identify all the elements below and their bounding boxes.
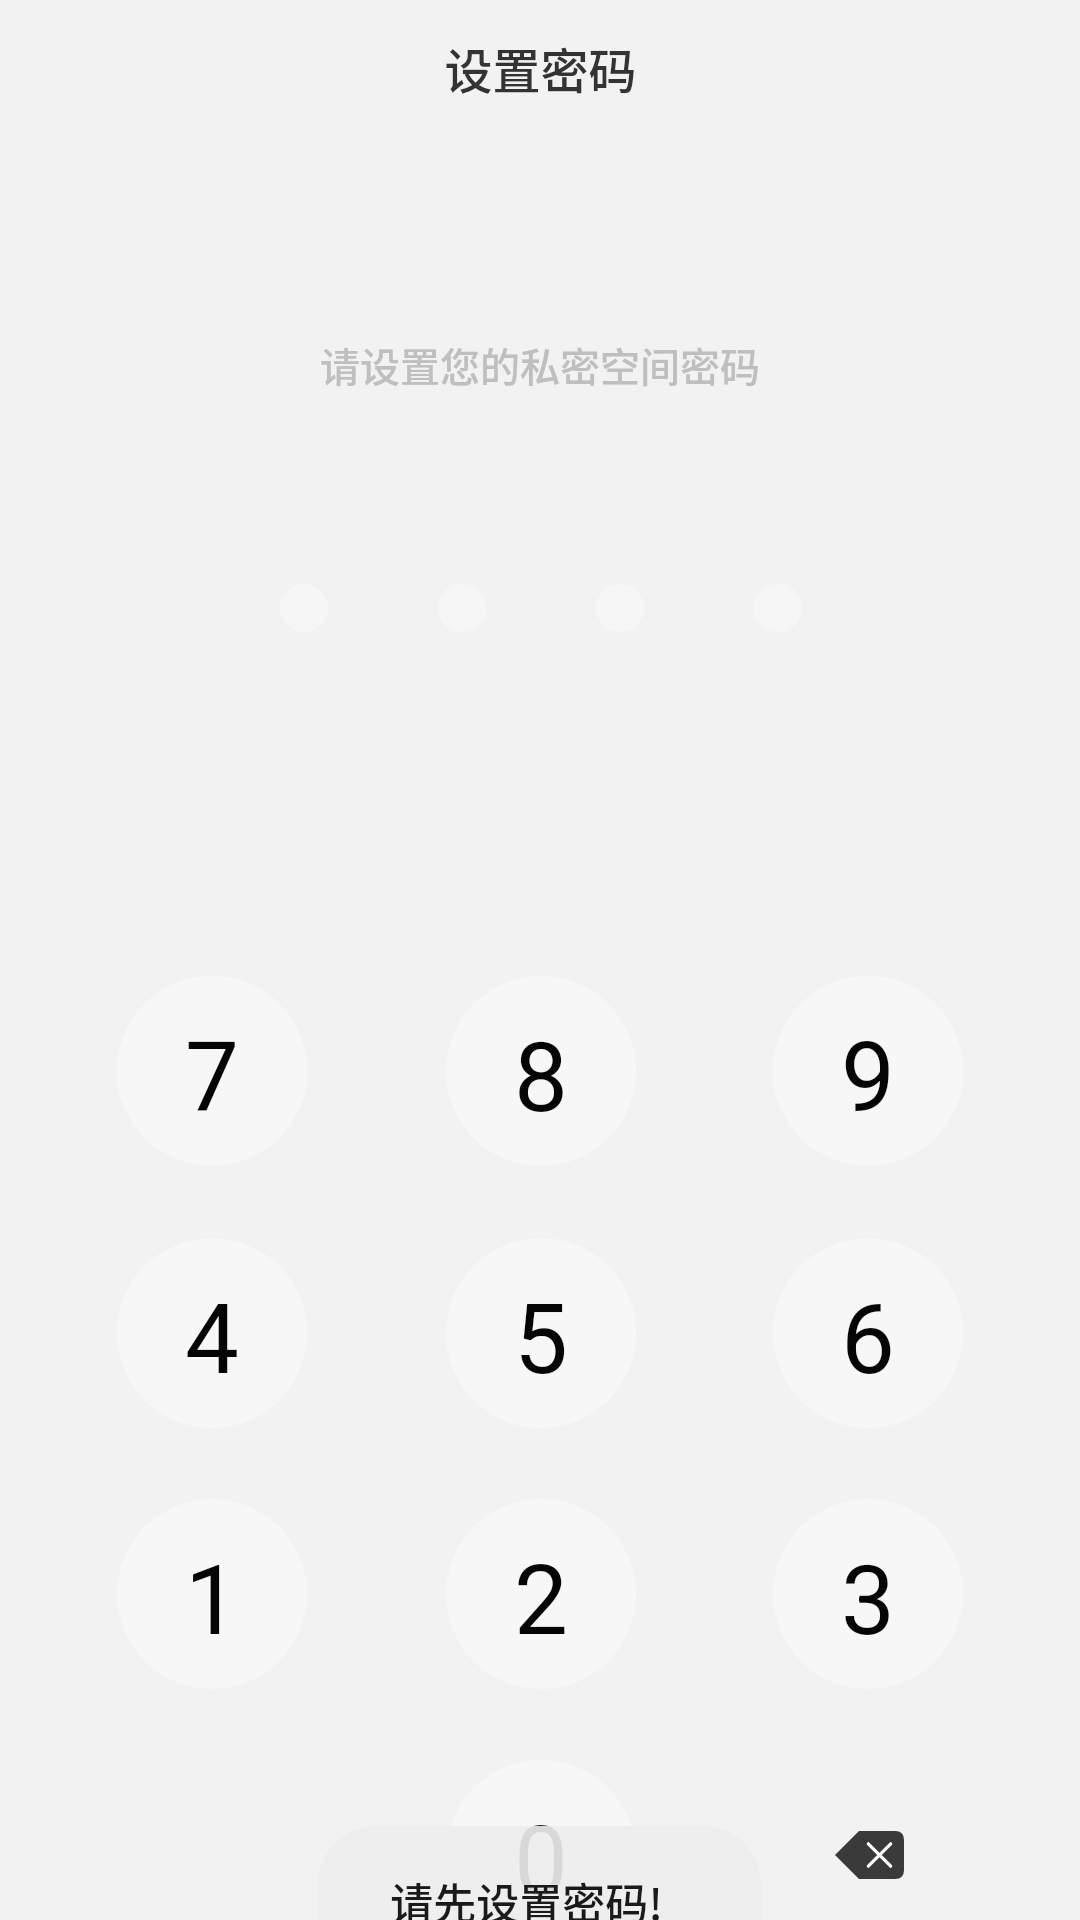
button[interactable]: 3	[773, 1499, 963, 1689]
staticText: 0	[514, 1806, 568, 1919]
staticText: 1	[185, 1545, 239, 1658]
staticText: 设置密码	[444, 33, 637, 103]
staticText: 请设置您的私密空间密码	[320, 336, 760, 394]
staticText: 请先设置密码!	[390, 1870, 663, 1920]
button[interactable]: 5	[446, 1238, 636, 1428]
button[interactable]: 4	[117, 1238, 307, 1428]
staticText: 5	[514, 1284, 568, 1397]
button[interactable]: 7	[117, 976, 307, 1166]
button[interactable]: 2	[446, 1499, 636, 1689]
button[interactable]: 1	[117, 1499, 307, 1689]
staticText: 7	[185, 1022, 239, 1135]
staticText: 6	[841, 1284, 895, 1397]
staticText: 9	[841, 1022, 895, 1135]
staticText: 2	[514, 1545, 568, 1658]
button[interactable]: Backspace	[789, 1790, 949, 1920]
staticText: 3	[841, 1545, 895, 1658]
button[interactable]: 6	[773, 1238, 963, 1428]
button[interactable]: 9	[773, 976, 963, 1166]
staticText: 8	[514, 1022, 568, 1135]
button[interactable]: 8	[446, 976, 636, 1166]
staticText: 4	[185, 1284, 239, 1397]
button[interactable]: 0	[446, 1760, 636, 1920]
